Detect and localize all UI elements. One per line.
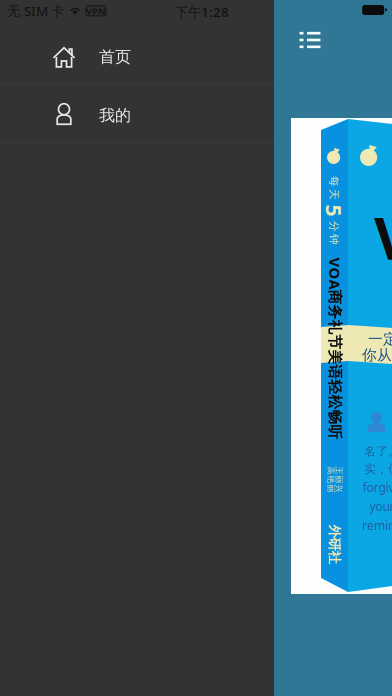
staticText: 艳 <box>327 475 335 484</box>
staticText: 我的 <box>99 106 131 125</box>
staticText: 研 <box>328 536 341 553</box>
staticText: 节 <box>327 333 342 351</box>
staticText: 松 <box>327 393 342 411</box>
button[interactable]: 首页 <box>0 26 274 84</box>
staticText: 高 <box>327 466 335 475</box>
staticText: 兴 <box>335 484 343 493</box>
staticText: 首页 <box>99 47 131 67</box>
staticText: 语 <box>327 363 342 381</box>
staticText: 天 <box>328 188 339 201</box>
staticText: V <box>330 253 340 272</box>
button[interactable]: Menu <box>288 18 332 62</box>
staticText: 丽 <box>335 475 343 484</box>
staticText: 外 <box>328 523 341 540</box>
button[interactable]: 我的 <box>0 85 274 142</box>
staticText: 王 <box>335 466 343 475</box>
staticText: 畅 <box>327 408 342 426</box>
staticText: A <box>330 275 340 294</box>
staticText: 商 <box>327 288 342 306</box>
staticText: remind <box>362 517 392 533</box>
staticText: O <box>329 264 341 283</box>
staticText: your <box>369 498 392 514</box>
staticText: 轻 <box>327 378 342 396</box>
staticText: forgive <box>362 479 392 495</box>
staticText: 实，使 <box>364 462 392 476</box>
staticText: 一定有 <box>368 330 392 348</box>
staticText: 美 <box>327 348 342 366</box>
staticText: 你从学 <box>362 346 392 364</box>
staticText: 无 SIM 卡 <box>7 2 64 20</box>
staticText: 听 <box>327 423 342 441</box>
staticText: 分 <box>328 220 339 233</box>
staticText: 5 <box>328 196 340 225</box>
staticText: 钟 <box>328 233 339 246</box>
staticText: 务 <box>327 303 342 321</box>
staticText: 丽 <box>327 484 335 493</box>
staticText: 每 <box>328 175 339 188</box>
staticText: VPN <box>86 5 106 17</box>
staticText: 下午1:28 <box>175 3 229 21</box>
staticText: 礼 <box>327 318 342 336</box>
staticText: 名了。 <box>364 444 392 459</box>
staticText: V <box>374 198 392 276</box>
staticText: 社 <box>328 549 341 566</box>
